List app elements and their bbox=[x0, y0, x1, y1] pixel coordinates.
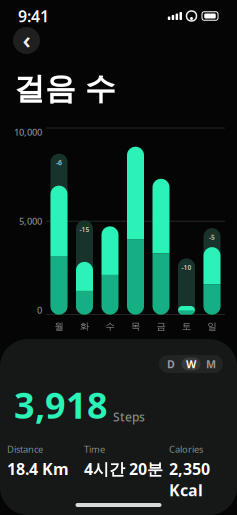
staticText: 화 bbox=[80, 321, 89, 332]
staticText: 일 bbox=[207, 321, 216, 332]
staticText: M bbox=[206, 357, 216, 371]
staticText: -10 bbox=[181, 263, 191, 272]
button[interactable]: D bbox=[161, 357, 180, 370]
staticText: D bbox=[167, 357, 175, 371]
staticText: -15 bbox=[79, 225, 89, 234]
staticText: 18.4 Km bbox=[7, 458, 69, 479]
staticText: 4시간 20분 bbox=[84, 458, 163, 479]
staticText: -6 bbox=[56, 158, 62, 167]
staticText: 수 bbox=[105, 321, 114, 332]
staticText: -5 bbox=[209, 233, 215, 242]
staticText: 걸음 수 bbox=[14, 70, 116, 108]
staticText: 2,350 Kcal bbox=[169, 458, 210, 501]
staticText: ‹ bbox=[22, 24, 30, 55]
staticText: Distance bbox=[7, 443, 43, 455]
staticText: 5,000 bbox=[19, 215, 42, 227]
staticText: W bbox=[186, 357, 196, 371]
button[interactable]: Back bbox=[13, 27, 40, 54]
staticText: 월 bbox=[54, 321, 63, 332]
staticText: 3,918 bbox=[14, 381, 108, 429]
staticText: 토 bbox=[182, 321, 191, 332]
staticText: Time bbox=[84, 443, 105, 455]
staticText: 10,000 bbox=[14, 126, 42, 138]
staticText: 0 bbox=[37, 304, 42, 316]
button[interactable]: W bbox=[181, 357, 200, 370]
staticText: Calories bbox=[169, 443, 203, 455]
staticText: 목 bbox=[131, 321, 140, 332]
button[interactable]: M bbox=[201, 357, 220, 370]
staticText: Steps bbox=[113, 409, 145, 425]
staticText: 금 bbox=[156, 321, 165, 332]
staticText: 9:41 bbox=[18, 5, 49, 27]
